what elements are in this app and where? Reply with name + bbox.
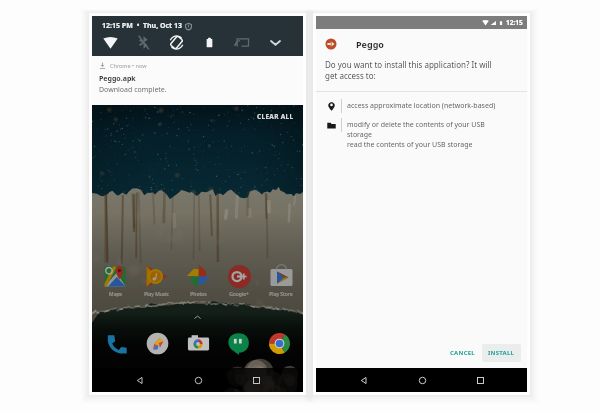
button[interactable]: Google+ xyxy=(220,264,258,298)
button[interactable]: Play Music xyxy=(141,327,173,359)
button[interactable]: Recents xyxy=(244,368,268,392)
staticText: Maps xyxy=(109,291,122,298)
staticText: Do you want to install this application?… xyxy=(325,59,492,81)
button[interactable]: Camera xyxy=(182,327,214,359)
staticText: access approximate location (network-bas… xyxy=(347,101,496,111)
button[interactable]: Phone xyxy=(101,327,133,359)
button[interactable]: Home xyxy=(410,368,434,392)
button[interactable]: Hangouts xyxy=(222,327,254,359)
button[interactable]: Play Music xyxy=(137,264,175,298)
staticText: INSTALL xyxy=(488,349,515,357)
staticText: Peggo.apk xyxy=(99,74,136,84)
staticText: 12:15 xyxy=(506,18,523,27)
staticText: Photos xyxy=(190,291,207,298)
button[interactable]: Cast xyxy=(232,32,252,52)
button[interactable]: Battery xyxy=(199,32,219,52)
staticText: Play Music xyxy=(144,291,169,298)
staticText: Google+ xyxy=(229,291,249,298)
staticText: Peggo xyxy=(356,38,384,50)
button[interactable]: Photos xyxy=(179,264,217,298)
button[interactable]: Chrome xyxy=(263,327,295,359)
button[interactable]: Maps xyxy=(96,264,134,298)
staticText: CANCEL xyxy=(450,349,475,357)
button[interactable]: Wi-Fi xyxy=(100,32,120,52)
button[interactable]: Back xyxy=(351,368,375,392)
button[interactable]: Bluetooth off xyxy=(133,32,153,52)
staticText: Thu, Oct 13 xyxy=(143,21,182,31)
button[interactable]: Auto rotate xyxy=(166,32,186,52)
staticText: Download complete. xyxy=(99,85,167,95)
staticText: modify or delete the contents of your US… xyxy=(347,120,485,150)
staticText: 12:15 PM xyxy=(102,21,133,31)
button[interactable]: Home xyxy=(186,368,210,392)
button[interactable]: Play Store xyxy=(262,264,300,298)
button[interactable]: CLEAR ALL xyxy=(257,105,303,121)
staticText: Play Store xyxy=(269,291,293,298)
button[interactable]: Back xyxy=(127,368,151,392)
button[interactable]: INSTALL xyxy=(482,344,521,362)
button[interactable]: Recents xyxy=(468,368,492,392)
button[interactable]: CANCEL xyxy=(444,345,481,361)
button[interactable]: Expand xyxy=(265,32,285,52)
staticText: • xyxy=(133,21,143,31)
staticText: CLEAR ALL xyxy=(257,112,294,121)
staticText: Chrome • now xyxy=(110,62,147,69)
